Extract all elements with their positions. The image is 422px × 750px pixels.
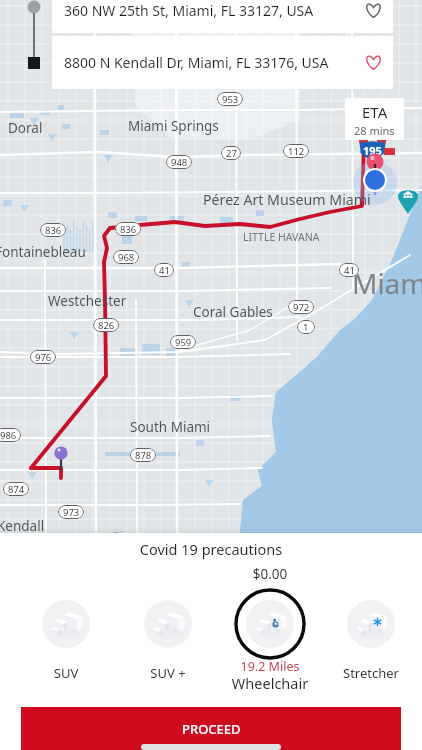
staticText: 826 (98, 319, 115, 332)
button[interactable]: ETA (345, 98, 404, 140)
staticText: 19.2 Miles (222, 658, 318, 675)
staticText: 27 (226, 147, 237, 160)
other: Favorite (364, 1, 383, 20)
staticText: 360 NW 25th St, Miami, FL 33127, USA (64, 1, 358, 20)
staticText: Doral (8, 119, 43, 137)
staticText: 28 mins (354, 123, 395, 138)
staticText: Kendall (0, 517, 45, 535)
button[interactable]: 8800 N Kendall Dr, Miami, FL 33176, USA (52, 36, 393, 89)
staticText: 986 (0, 429, 17, 442)
staticText: 874 (8, 483, 25, 496)
staticText: 972 (293, 301, 310, 314)
staticText: 41 (344, 264, 355, 277)
staticText: South Miami (130, 418, 211, 436)
staticText: $0.00 (222, 565, 318, 583)
staticText: Miami Springs (128, 117, 219, 135)
staticText: Coral Gables (193, 303, 273, 321)
staticText: Fontainebleau (0, 243, 86, 261)
staticText: PROCEED (182, 720, 241, 738)
staticText: Wheelchair (222, 673, 318, 693)
staticText: 976 (35, 351, 52, 364)
staticText: 878 (135, 449, 152, 462)
staticText: 953 (222, 93, 239, 106)
other: Museum (398, 186, 418, 214)
staticText: Westchester (48, 292, 127, 310)
staticText: Miami (352, 264, 422, 302)
staticText: SUV (18, 664, 114, 682)
staticText: Covid 19 precautions (0, 539, 422, 559)
staticText: LITTLE HAVANA (243, 230, 320, 244)
button[interactable]: SUV + (120, 561, 216, 691)
staticText: 1 (303, 321, 309, 334)
staticText: ETA (362, 102, 388, 122)
button[interactable]: SUV (18, 561, 114, 691)
staticText: Stretcher (323, 664, 419, 682)
button[interactable]: Stretcher (323, 561, 419, 691)
staticText: SUV + (120, 664, 216, 682)
other: Favorite (364, 53, 383, 72)
staticText: 836 (45, 224, 62, 237)
staticText: 973 (63, 506, 80, 519)
button[interactable]: $0.00 (222, 561, 318, 691)
staticText: Pinecrest (112, 527, 169, 545)
staticText: 195 (363, 143, 382, 158)
staticText: Pérez Art Museum Miami (203, 190, 371, 209)
button[interactable]: 360 NW 25th St, Miami, FL 33127, USA (52, 0, 393, 33)
staticText: 959 (175, 336, 192, 349)
staticText: 112 (288, 145, 305, 158)
staticText: 836 (120, 223, 137, 236)
staticText: 8800 N Kendall Dr, Miami, FL 33176, USA (64, 53, 358, 72)
staticText: 968 (118, 251, 135, 264)
staticText: 41 (159, 264, 170, 277)
button[interactable]: PROCEED (21, 707, 401, 750)
staticText: 948 (171, 156, 188, 169)
